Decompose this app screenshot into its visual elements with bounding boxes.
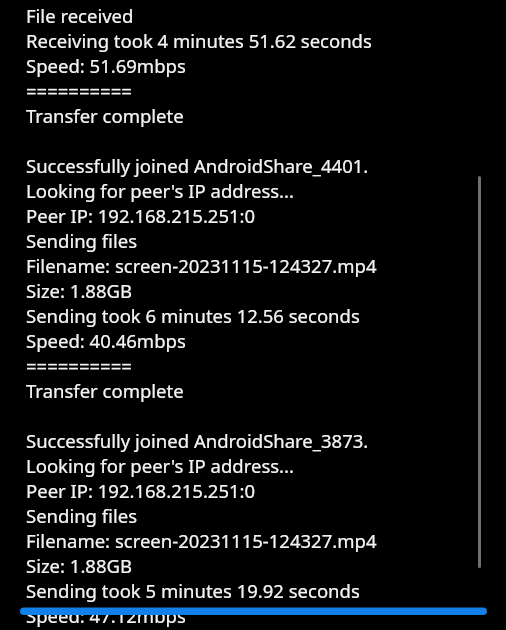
staticText: Speed: 40.46mbps	[26, 328, 476, 353]
staticText: Sending took 6 minutes 12.56 seconds	[26, 303, 476, 328]
staticText: Peer IP: 192.168.215.251:0	[26, 478, 476, 503]
staticText: Size: 1.88GB	[26, 278, 476, 303]
staticText: Looking for peer's IP address...	[26, 453, 476, 478]
staticText: ==========	[26, 78, 476, 103]
staticText: Filename: screen-20231115-124327.mp4	[26, 528, 476, 553]
staticText: Filename: screen-20231115-124327.mp4	[26, 253, 476, 278]
staticText: Speed: 51.69mbps	[26, 53, 476, 78]
staticText: ==========	[26, 353, 476, 378]
staticText: Looking for peer's IP address...	[26, 178, 476, 203]
button[interactable]: File received	[26, 3, 476, 630]
staticText: Size: 1.88GB	[26, 553, 476, 578]
staticText: Peer IP: 192.168.215.251:0	[26, 203, 476, 228]
staticText: Sending took 5 minutes 19.92 seconds	[26, 578, 476, 603]
staticText: Successfully joined AndroidShare_3873.	[26, 428, 476, 453]
staticText: Transfer complete	[26, 378, 476, 403]
other: Scroll position	[478, 176, 481, 568]
staticText: Transfer complete	[26, 103, 476, 128]
staticText: Receiving took 4 minutes 51.62 seconds	[26, 28, 476, 53]
other: Transfer progress	[0, 0, 506, 630]
staticText: Successfully joined AndroidShare_4401.	[26, 153, 476, 178]
staticText: Speed: 47.12mbps	[26, 603, 476, 628]
staticText: File received	[26, 3, 476, 28]
staticText: Sending files	[26, 228, 476, 253]
staticText: Sending files	[26, 503, 476, 528]
